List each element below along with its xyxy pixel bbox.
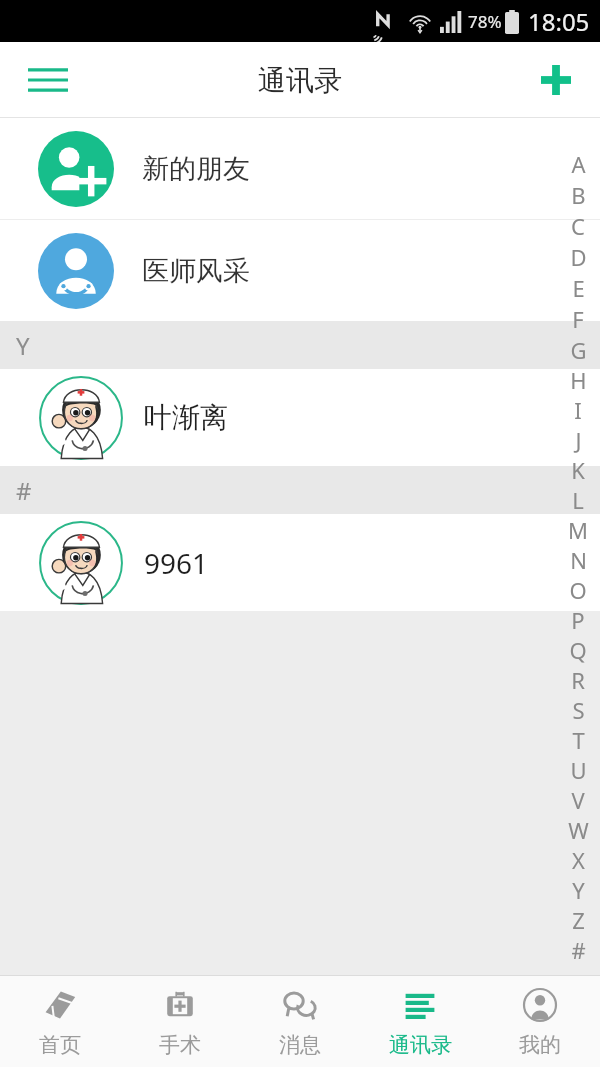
button[interactable]: Menu <box>16 50 80 110</box>
button[interactable]: A <box>556 148 600 179</box>
button[interactable]: P <box>556 605 600 635</box>
staticText: 通讯录 <box>258 63 342 98</box>
staticText: C <box>571 211 585 241</box>
button[interactable]: I <box>556 395 600 425</box>
staticText: O <box>569 575 587 605</box>
button[interactable]: # <box>556 935 600 965</box>
staticText: L <box>572 485 584 515</box>
button[interactable]: K <box>556 455 600 485</box>
staticText: Y <box>572 875 585 905</box>
staticText: 手术 <box>159 1032 201 1058</box>
button[interactable]: 9961 <box>0 514 600 611</box>
button[interactable]: Q <box>556 635 600 665</box>
button[interactable]: 消息 <box>240 976 360 1067</box>
button[interactable]: 叶渐离 <box>0 369 600 466</box>
staticText: P <box>571 605 585 635</box>
button[interactable]: W <box>556 815 600 845</box>
staticText: I <box>574 395 582 425</box>
button[interactable]: 手术 <box>120 976 240 1067</box>
button[interactable]: F <box>556 303 600 334</box>
button[interactable]: D <box>556 241 600 272</box>
staticText: T <box>572 725 585 755</box>
button[interactable]: 首页 <box>0 976 120 1067</box>
staticText: F <box>572 304 584 334</box>
staticText: A <box>571 149 586 179</box>
staticText: D <box>570 242 587 272</box>
button[interactable]: N <box>556 545 600 575</box>
staticText: G <box>570 335 587 365</box>
staticText: 消息 <box>279 1032 321 1058</box>
button[interactable]: X <box>556 845 600 875</box>
button[interactable]: V <box>556 785 600 815</box>
button[interactable]: T <box>556 725 600 755</box>
staticText: # <box>571 935 586 965</box>
staticText: K <box>571 455 585 485</box>
staticText: 78% <box>468 10 502 33</box>
button[interactable]: Z <box>556 905 600 935</box>
staticText: 新的朋友 <box>142 152 250 186</box>
staticText: 通讯录 <box>389 1032 452 1058</box>
staticText: # <box>16 474 32 507</box>
button[interactable]: M <box>556 515 600 545</box>
button[interactable]: J <box>556 425 600 455</box>
button[interactable]: 新的朋友 <box>0 118 600 219</box>
button[interactable]: O <box>556 575 600 605</box>
staticText: B <box>571 180 586 210</box>
button[interactable]: U <box>556 755 600 785</box>
staticText: 医师风采 <box>142 254 250 288</box>
staticText: N <box>570 545 587 575</box>
button[interactable]: G <box>556 334 600 365</box>
staticText: Z <box>572 905 585 935</box>
staticText: H <box>570 365 587 395</box>
button[interactable]: R <box>556 665 600 695</box>
staticText: 首页 <box>39 1032 81 1058</box>
button[interactable]: 我的 <box>480 976 600 1067</box>
button[interactable]: E <box>556 272 600 303</box>
staticText: X <box>572 845 585 875</box>
button[interactable]: Y <box>556 875 600 905</box>
button[interactable]: Add contact <box>528 52 584 108</box>
staticText: J <box>575 425 582 455</box>
staticText: S <box>572 695 585 725</box>
button[interactable]: B <box>556 179 600 210</box>
button[interactable]: L <box>556 485 600 515</box>
staticText: E <box>572 273 585 303</box>
button[interactable]: H <box>556 365 600 395</box>
staticText: M <box>568 515 588 545</box>
staticText: Q <box>569 635 587 665</box>
staticText: U <box>570 755 587 785</box>
staticText: 18:05 <box>528 5 590 38</box>
staticText: 我的 <box>519 1032 561 1058</box>
staticText: V <box>571 785 585 815</box>
staticText: 叶渐离 <box>144 400 228 435</box>
button[interactable]: S <box>556 695 600 725</box>
button[interactable]: C <box>556 210 600 241</box>
staticText: W <box>568 815 589 845</box>
staticText: R <box>571 665 585 695</box>
staticText: 9961 <box>144 544 209 582</box>
button[interactable]: 医师风采 <box>0 220 600 321</box>
staticText: Y <box>16 329 30 362</box>
button[interactable]: 通讯录 <box>360 976 480 1067</box>
